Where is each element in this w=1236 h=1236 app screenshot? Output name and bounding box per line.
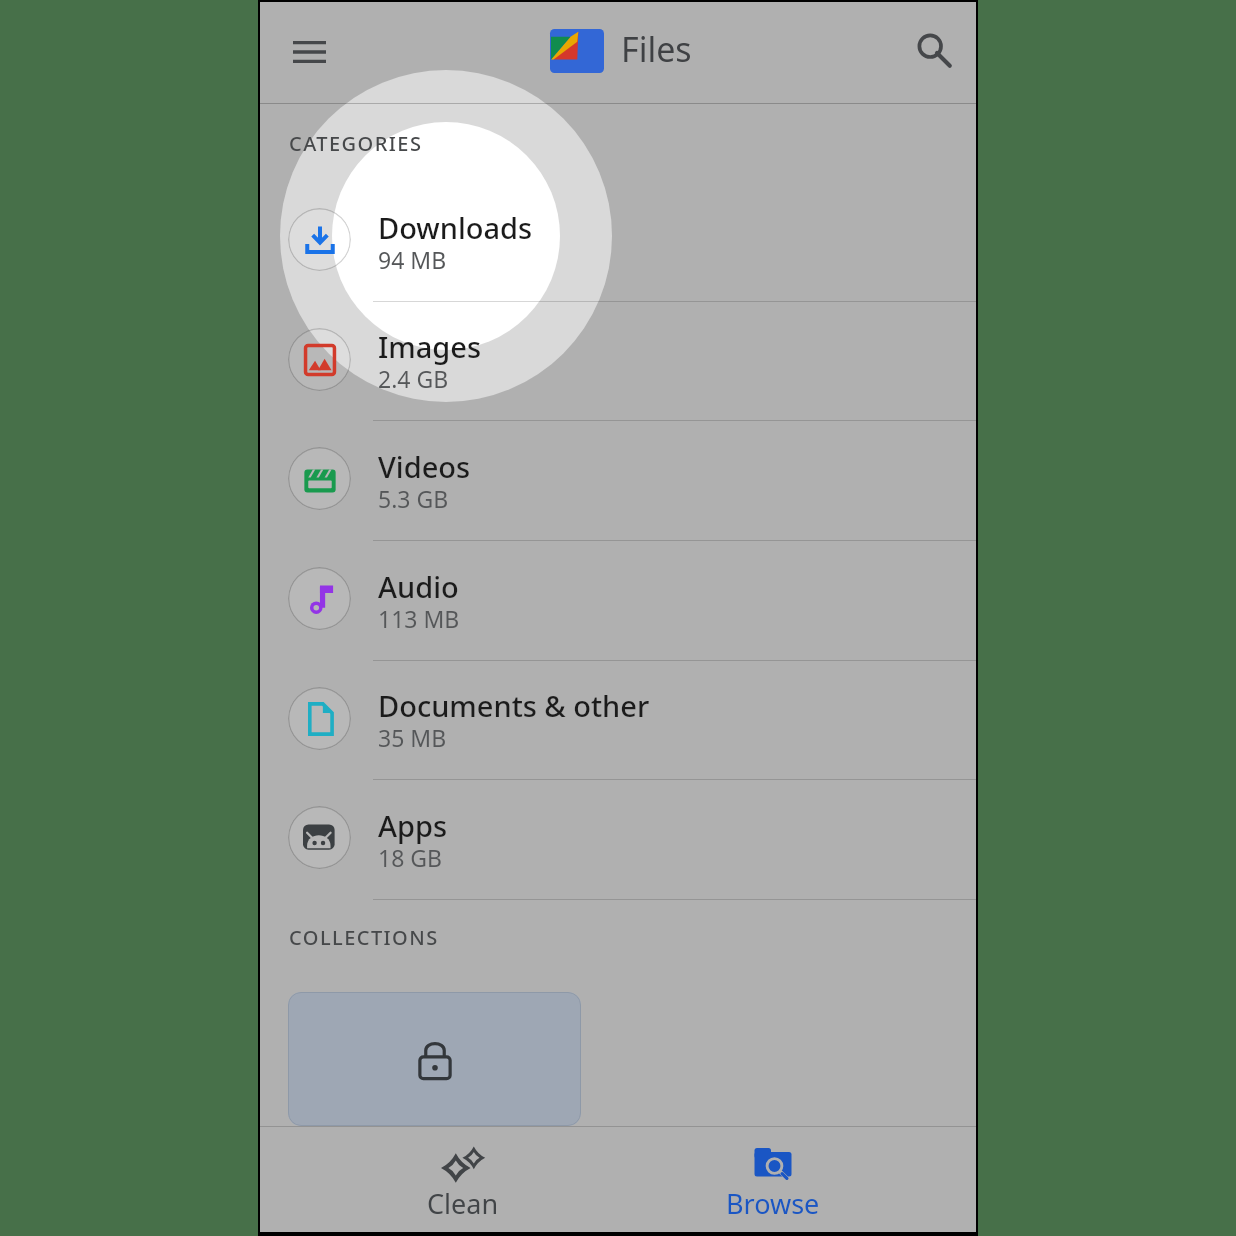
staticText: COLLECTIONS — [289, 924, 439, 951]
staticText: 5.3 GB — [378, 483, 449, 514]
button[interactable]: Apps — [260, 780, 976, 900]
staticText: Browse — [726, 1185, 820, 1222]
staticText: Apps — [378, 806, 448, 845]
button[interactable]: Downloads — [260, 182, 976, 302]
button[interactable]: Audio — [260, 541, 976, 661]
button[interactable]: Safe folder — [288, 992, 581, 1126]
button[interactable]: Videos — [260, 421, 976, 541]
button[interactable]: Documents & other — [260, 661, 976, 780]
staticText: Documents & other — [378, 686, 650, 725]
staticText: 2.4 GB — [378, 363, 449, 394]
staticText: Videos — [378, 447, 471, 486]
staticText: Downloads — [378, 208, 533, 247]
staticText: Files — [621, 26, 692, 72]
staticText: 18 GB — [378, 842, 442, 873]
staticText: 113 MB — [378, 603, 460, 634]
staticText: 35 MB — [378, 722, 447, 753]
button[interactable]: Clean — [363, 1132, 563, 1232]
button[interactable]: Images — [260, 302, 976, 421]
button[interactable]: Browse — [673, 1132, 873, 1232]
staticText: CATEGORIES — [289, 130, 423, 157]
button[interactable]: Search — [899, 15, 969, 85]
button[interactable]: Open navigation menu — [274, 17, 344, 87]
staticText: Images — [378, 327, 482, 366]
staticText: 94 MB — [378, 244, 447, 275]
staticText: Audio — [378, 567, 459, 606]
staticText: Clean — [427, 1185, 499, 1222]
